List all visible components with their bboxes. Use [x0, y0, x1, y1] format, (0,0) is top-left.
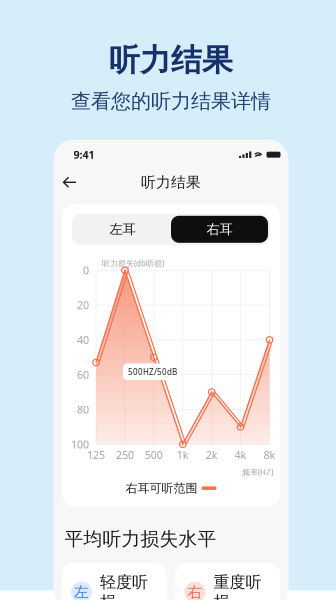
- staticText: 250: [116, 448, 134, 462]
- staticText: 查看您的听力结果详情: [71, 89, 271, 114]
- button[interactable]: 右耳: [171, 216, 268, 243]
- staticText: 平均听力损失水平: [64, 527, 216, 550]
- staticText: 500HZ/50dB: [128, 366, 177, 377]
- staticText: 重度听损: [213, 572, 261, 600]
- staticText: 右耳可听范围: [125, 481, 197, 495]
- button[interactable]: 返回: [58, 173, 81, 192]
- staticText: 40: [77, 333, 89, 347]
- staticText: 听力结果: [141, 173, 201, 191]
- staticText: 1k: [177, 448, 189, 462]
- staticText: 听力损失(db听损): [102, 258, 164, 269]
- staticText: 20: [77, 298, 89, 312]
- staticText: 右: [187, 583, 202, 600]
- staticText: 4k: [235, 448, 247, 462]
- staticText: 右耳: [206, 221, 232, 237]
- staticText: 9:41: [73, 148, 94, 162]
- staticText: 轻度听损: [100, 572, 148, 600]
- button[interactable]: 左耳: [74, 216, 171, 243]
- staticText: 100: [71, 437, 89, 451]
- staticText: 500: [145, 448, 163, 462]
- staticText: 8k: [263, 448, 275, 462]
- staticText: 左耳: [109, 221, 135, 237]
- button[interactable]: 右: [175, 563, 280, 600]
- staticText: 80: [77, 402, 89, 417]
- staticText: 频率(HZ): [242, 467, 273, 478]
- staticText: 听力结果: [109, 41, 233, 79]
- staticText: 0: [83, 263, 89, 277]
- staticText: 60: [77, 368, 89, 382]
- staticText: 125: [87, 448, 105, 462]
- staticText: 2k: [206, 448, 218, 462]
- button[interactable]: 左: [62, 563, 166, 600]
- staticText: 左: [74, 583, 89, 600]
